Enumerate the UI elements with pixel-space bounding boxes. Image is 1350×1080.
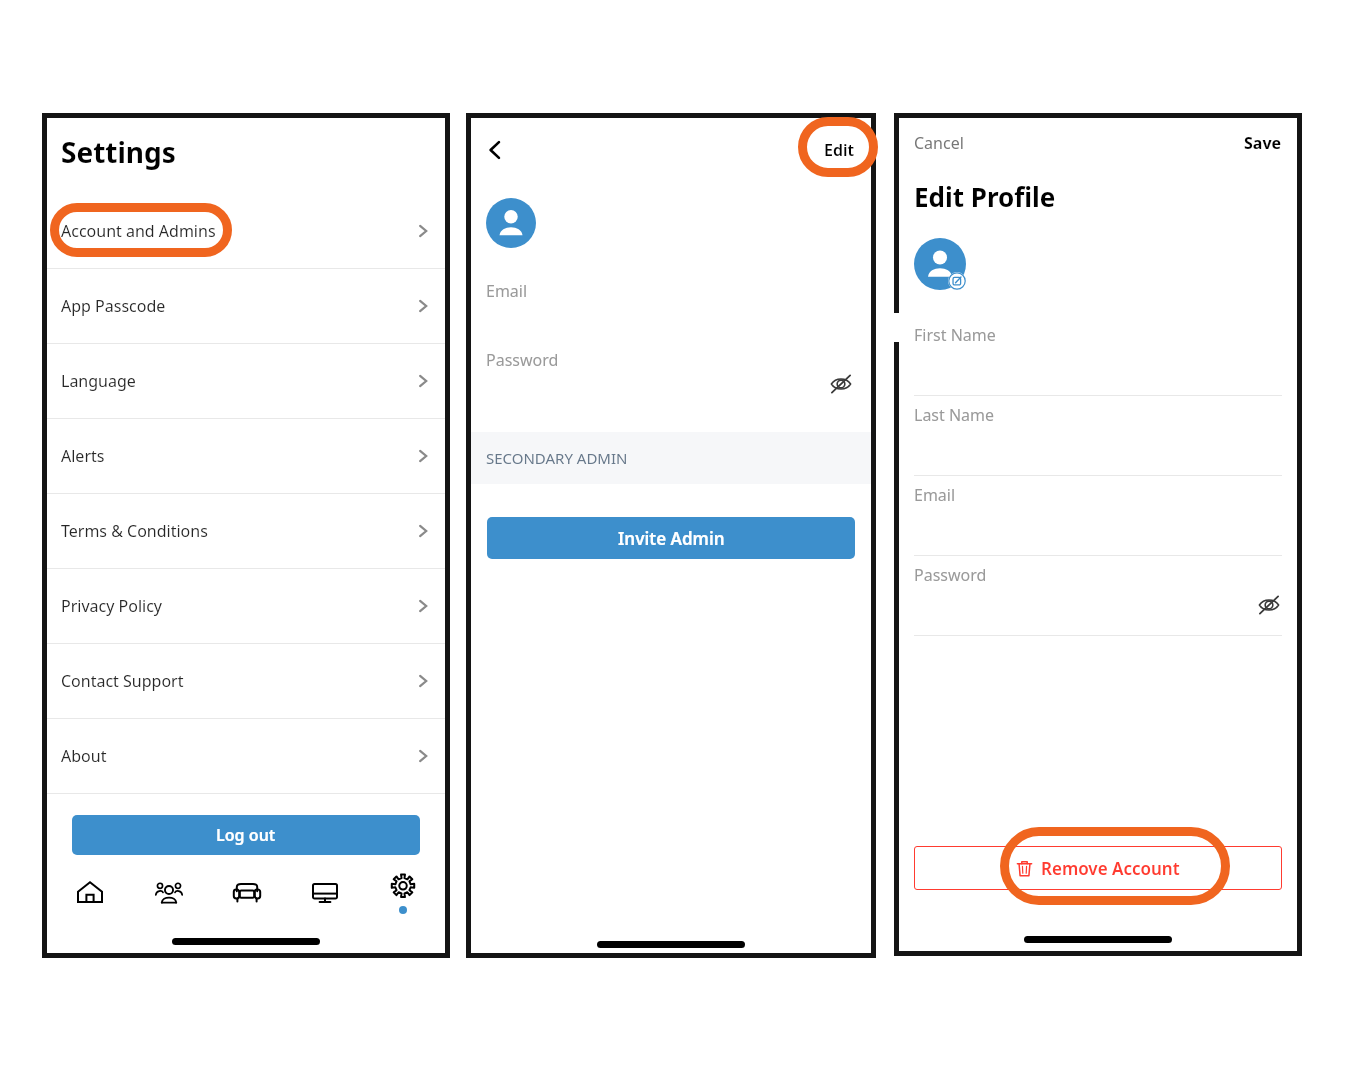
- button[interactable]: Last Name: [894, 396, 1302, 476]
- staticText: Settings: [61, 133, 176, 171]
- button[interactable]: Show password: [1256, 592, 1282, 618]
- staticText: Log out: [216, 824, 276, 846]
- staticText: Save: [1244, 132, 1282, 154]
- button[interactable]: Email: [466, 274, 876, 347]
- button[interactable]: Email: [894, 476, 1302, 556]
- button[interactable]: Invite Admin: [487, 517, 855, 559]
- button[interactable]: Back: [484, 134, 516, 166]
- button[interactable]: Privacy Policy: [42, 569, 450, 643]
- button[interactable]: Edit: [820, 135, 858, 165]
- staticText: Remove Account: [1041, 857, 1180, 880]
- button[interactable]: Log out: [72, 815, 420, 855]
- staticText: First Name: [914, 324, 996, 346]
- button[interactable]: Save: [1244, 132, 1282, 154]
- staticText: Email: [486, 280, 528, 302]
- button[interactable]: App Passcode: [42, 269, 450, 343]
- button[interactable]: Furniture: [208, 869, 286, 917]
- button[interactable]: People: [129, 869, 208, 917]
- staticText: Contact Support: [61, 670, 184, 692]
- staticText: About: [61, 745, 107, 767]
- button[interactable]: Home: [50, 869, 129, 917]
- button[interactable]: First Name: [894, 316, 1302, 396]
- button[interactable]: Contact Support: [42, 644, 450, 718]
- staticText: Terms & Conditions: [61, 520, 208, 542]
- staticText: Password: [486, 349, 559, 371]
- button[interactable]: About: [42, 719, 450, 793]
- button[interactable]: Password: [466, 347, 876, 432]
- button[interactable]: Language: [42, 344, 450, 418]
- staticText: Edit: [824, 139, 854, 161]
- staticText: Last Name: [914, 404, 995, 426]
- button[interactable]: Settings: [364, 869, 442, 917]
- staticText: Email: [914, 484, 956, 506]
- staticText: Alerts: [61, 445, 105, 467]
- staticText: Cancel: [914, 132, 964, 154]
- button[interactable]: Remove Account: [914, 846, 1282, 890]
- staticText: SECONDARY ADMIN: [486, 448, 628, 468]
- button[interactable]: Show password: [828, 371, 854, 397]
- staticText: Language: [61, 370, 136, 392]
- button[interactable]: Alerts: [42, 419, 450, 493]
- button[interactable]: Account and Admins: [42, 194, 450, 268]
- button[interactable]: Display: [286, 869, 364, 917]
- button[interactable]: Cancel: [914, 132, 964, 154]
- button[interactable]: Password: [894, 556, 1302, 636]
- staticText: Invite Admin: [618, 527, 725, 550]
- staticText: Password: [914, 564, 987, 586]
- staticText: Privacy Policy: [61, 595, 162, 617]
- staticText: Edit Profile: [914, 179, 1056, 214]
- staticText: Account and Admins: [61, 220, 216, 242]
- staticText: App Passcode: [61, 295, 166, 317]
- button[interactable]: Terms & Conditions: [42, 494, 450, 568]
